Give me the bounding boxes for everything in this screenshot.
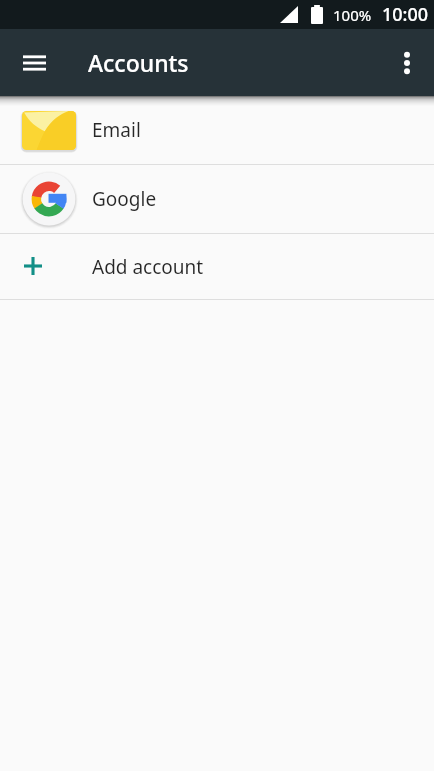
button[interactable]: Google [0, 165, 434, 233]
button[interactable]: Email [0, 96, 434, 164]
staticText: Accounts [88, 47, 189, 78]
staticText: Email [92, 117, 141, 143]
button[interactable]: Add account [0, 234, 434, 299]
staticText: 10:00 [382, 2, 429, 27]
staticText: Add account [92, 254, 204, 280]
button[interactable]: Open navigation drawer [10, 39, 58, 87]
staticText: Google [92, 186, 157, 212]
staticText: 100% [333, 5, 372, 25]
button[interactable]: More options [383, 39, 431, 87]
